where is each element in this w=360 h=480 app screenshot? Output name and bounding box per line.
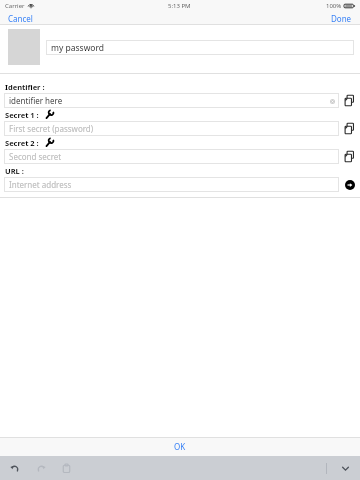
button[interactable]: identifier here xyxy=(4,93,339,108)
staticText: my password xyxy=(51,42,105,54)
staticText: Done xyxy=(331,13,352,24)
button[interactable]: Copy xyxy=(342,121,357,136)
button[interactable]: Internet address xyxy=(4,177,339,192)
staticText: OK xyxy=(174,441,186,452)
button[interactable]: Undo xyxy=(5,459,24,478)
button[interactable]: First secret (password) xyxy=(4,121,339,136)
staticText: Carrier xyxy=(5,2,25,10)
staticText: 5:13 PM xyxy=(168,2,191,10)
button[interactable]: Second secret xyxy=(4,149,339,164)
button[interactable]: Generate secret xyxy=(44,109,55,120)
staticText: Cancel xyxy=(8,13,33,24)
staticText: URL : xyxy=(5,166,24,176)
button[interactable]: Cancel xyxy=(0,11,41,25)
staticText: Internet address xyxy=(9,179,339,190)
button[interactable]: Copy xyxy=(342,93,357,108)
staticText: Secret 1 : xyxy=(5,110,39,120)
staticText: 100% xyxy=(326,2,342,10)
button[interactable]: Done xyxy=(323,11,360,25)
button[interactable]: my password xyxy=(46,40,354,55)
staticText: Secret 2 : xyxy=(5,138,39,148)
staticText: First secret (password) xyxy=(9,123,339,134)
button[interactable]: OK xyxy=(174,437,186,456)
button[interactable]: Hide keyboard xyxy=(336,459,355,478)
button[interactable]: Generate secret xyxy=(44,137,55,148)
button[interactable]: Paste xyxy=(57,459,76,478)
button[interactable]: Open URL xyxy=(342,177,357,192)
button[interactable]: Clear xyxy=(326,95,338,107)
button[interactable]: Copy xyxy=(342,149,357,164)
staticText: Second secret xyxy=(9,151,339,162)
staticText: identifier here xyxy=(9,95,326,106)
staticText: Identifier : xyxy=(5,82,45,92)
button[interactable]: Redo xyxy=(31,459,50,478)
